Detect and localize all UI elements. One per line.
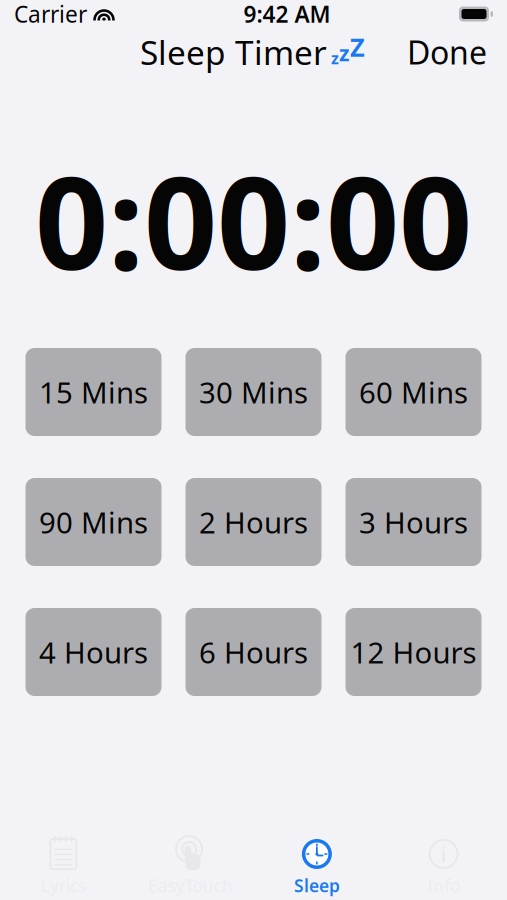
staticText: Done (407, 31, 487, 73)
staticText: 90 Mins (39, 502, 148, 541)
staticText: 9:42 AM (243, 0, 330, 29)
button[interactable]: 6 Hours (185, 608, 321, 696)
staticText: 6 Hours (199, 632, 308, 671)
staticText: 4 Hours (39, 632, 148, 671)
staticText: 60 Mins (359, 372, 468, 411)
staticText: 30 Mins (199, 372, 308, 411)
button[interactable]: 4 Hours (25, 608, 161, 696)
button[interactable]: 30 Mins (185, 348, 321, 436)
staticText: Sleep (294, 874, 340, 897)
staticText: Carrier (14, 0, 87, 29)
staticText: z (339, 39, 350, 67)
button[interactable]: 15 Mins (25, 348, 161, 436)
button[interactable]: 2 Hours (185, 478, 321, 566)
staticText: Sleep Timer (140, 30, 327, 74)
staticText: 3 Hours (359, 502, 468, 541)
button[interactable]: 90 Mins (25, 478, 161, 566)
staticText: 0:00:00 (35, 135, 472, 305)
staticText: 2 Hours (199, 502, 308, 541)
button[interactable]: 60 Mins (345, 348, 481, 436)
staticText: 15 Mins (39, 372, 148, 411)
button[interactable]: Done (397, 25, 497, 79)
staticText: Z (350, 30, 365, 64)
button[interactable]: Sleep (253, 836, 380, 898)
staticText: 12 Hours (350, 632, 476, 671)
button[interactable]: 12 Hours (345, 608, 481, 696)
staticText: z (331, 47, 339, 69)
button[interactable]: 3 Hours (345, 478, 481, 566)
